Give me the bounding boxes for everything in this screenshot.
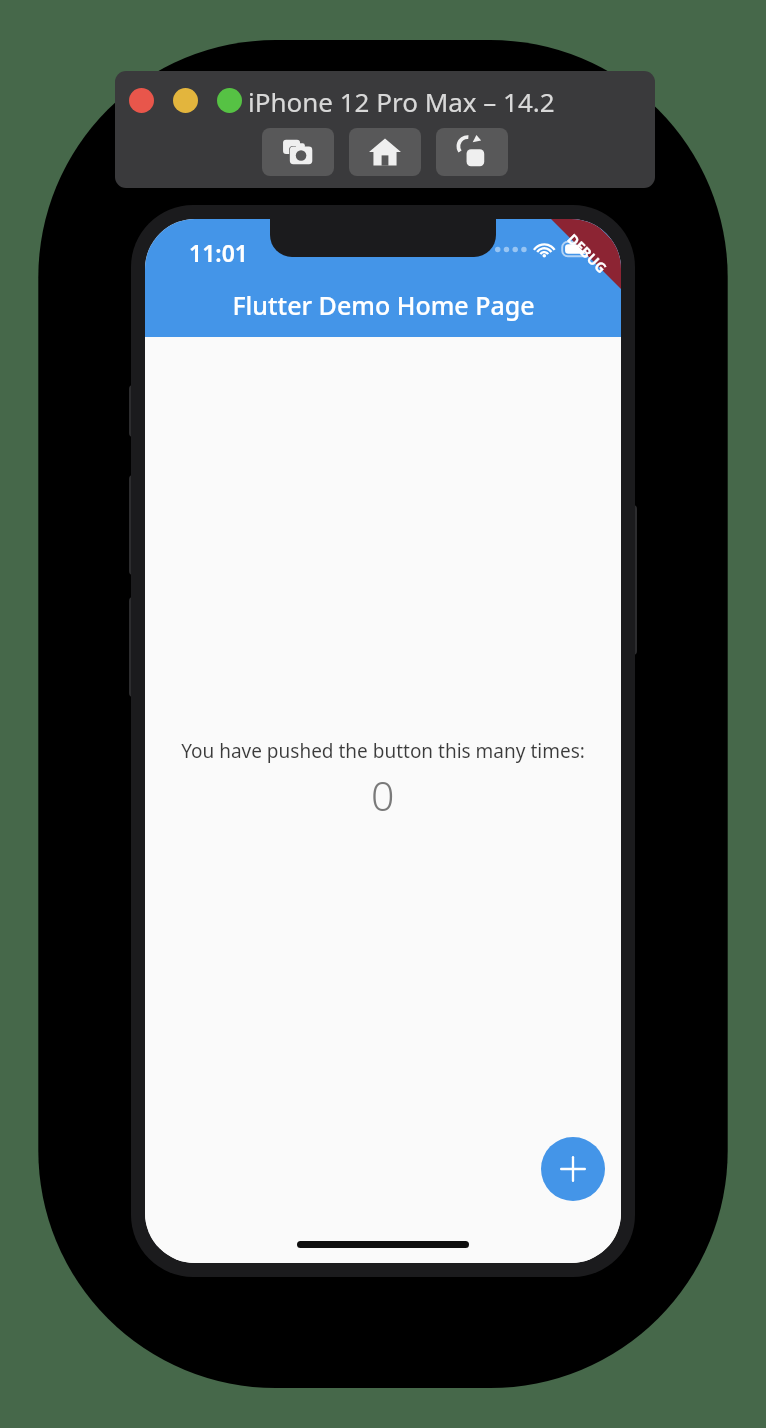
button[interactable]: Minimize window (173, 88, 198, 113)
button[interactable]: Screenshot (262, 128, 334, 176)
button[interactable]: Home (349, 128, 421, 176)
button[interactable]: Close window (129, 88, 154, 113)
staticText: DEBUG (563, 229, 612, 278)
staticText: 11:01 (189, 237, 248, 268)
button[interactable]: Rotate (436, 128, 508, 176)
staticText: You have pushed the button this many tim… (181, 738, 585, 764)
button[interactable]: Zoom window (217, 88, 242, 113)
staticText: Flutter Demo Home Page (232, 288, 535, 322)
staticText: iPhone 12 Pro Max – 14.2 (248, 84, 555, 119)
staticText: 0 (371, 767, 395, 823)
button[interactable]: Increment (541, 1137, 605, 1201)
